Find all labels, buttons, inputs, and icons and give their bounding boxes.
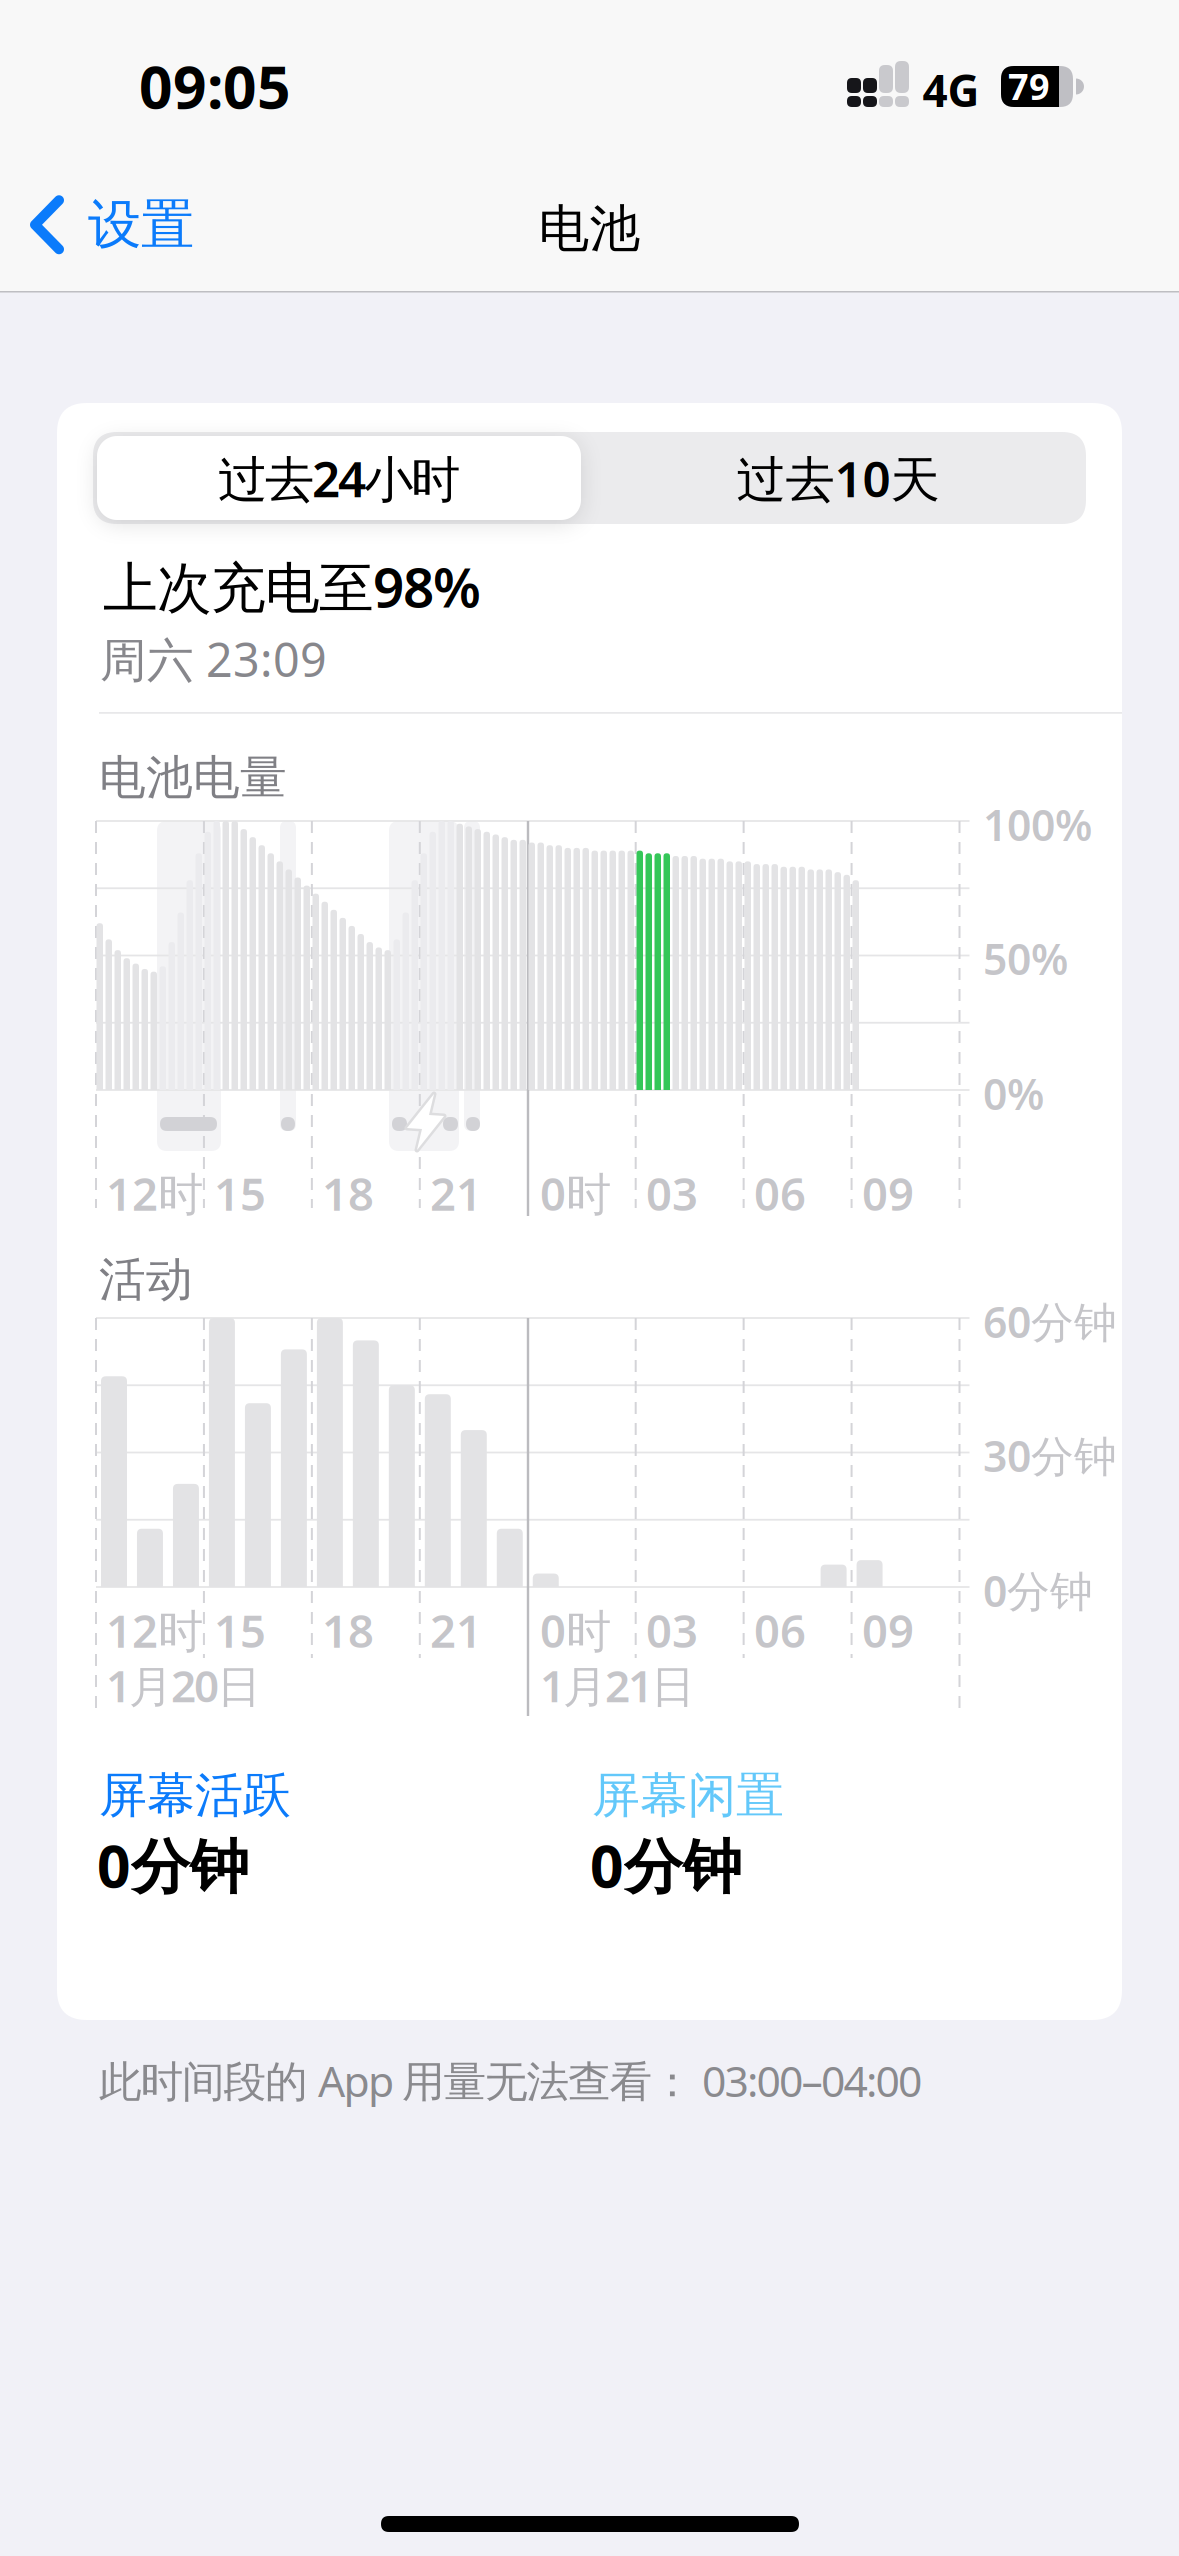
- staticText: 此时间段的 App 用量无法查看： 03:00–04:00: [99, 2052, 922, 2109]
- staticText: 过去24小时: [218, 445, 460, 511]
- staticText: 过去10天: [736, 445, 939, 511]
- staticText: 09: [862, 1600, 914, 1660]
- button[interactable]: 设置: [30, 192, 194, 257]
- staticText: 18: [322, 1600, 374, 1660]
- staticText: 0时: [540, 1163, 611, 1223]
- staticText: 100%: [983, 796, 1092, 853]
- staticText: 06: [754, 1163, 806, 1223]
- staticText: 21: [430, 1600, 482, 1660]
- staticText: 03: [646, 1163, 698, 1223]
- staticText: 电池电量: [99, 749, 287, 806]
- staticText: 0分钟: [983, 1562, 1093, 1619]
- button[interactable]: 过去10天: [596, 436, 1080, 520]
- staticText: 屏幕活跃: [99, 1766, 291, 1825]
- staticText: 活动: [99, 1251, 193, 1308]
- button[interactable]: 过去24小时: [97, 436, 581, 520]
- staticText: 12时: [106, 1600, 203, 1660]
- staticText: 周六 23:09: [100, 628, 327, 690]
- staticText: 03: [646, 1600, 698, 1660]
- staticText: 09:05: [139, 47, 291, 125]
- staticText: 50%: [983, 930, 1068, 987]
- staticText: 09: [862, 1163, 914, 1223]
- staticText: 18: [322, 1163, 374, 1223]
- staticText: 1月20日: [106, 1656, 261, 1714]
- staticText: 0%: [983, 1065, 1044, 1122]
- staticText: 21: [430, 1163, 482, 1223]
- staticText: 15: [214, 1163, 266, 1223]
- staticText: 0分钟: [97, 1826, 249, 1904]
- staticText: 30分钟: [983, 1427, 1117, 1484]
- staticText: 4G: [922, 61, 979, 119]
- staticText: 12时: [106, 1163, 203, 1223]
- staticText: 1月21日: [540, 1656, 695, 1714]
- staticText: 上次充电至98%: [103, 550, 481, 623]
- staticText: 15: [214, 1600, 266, 1660]
- staticText: 0分钟: [590, 1826, 742, 1904]
- staticText: 屏幕闲置: [592, 1766, 784, 1825]
- staticText: 79: [1008, 62, 1050, 110]
- staticText: 设置: [88, 192, 194, 257]
- staticText: 0时: [540, 1600, 611, 1660]
- staticText: 电池: [538, 198, 640, 260]
- staticText: 06: [754, 1600, 806, 1660]
- staticText: 60分钟: [983, 1293, 1117, 1350]
